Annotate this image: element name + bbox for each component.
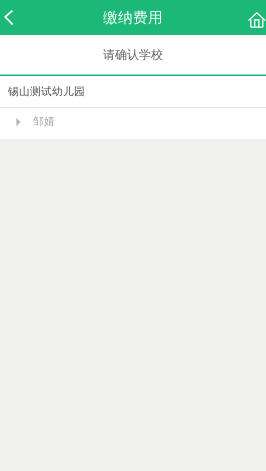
button[interactable]: Home (238, 0, 266, 35)
button[interactable]: Back (0, 0, 24, 35)
staticText: 缴纳费用 (103, 8, 163, 26)
button[interactable]: 请确认学校 (0, 35, 266, 76)
staticText: 请确认学校 (103, 47, 163, 62)
staticText: 锡山测试幼儿园 (8, 85, 85, 98)
button[interactable]: 锡山测试幼儿园 (0, 76, 266, 107)
button[interactable]: 邹婧 (0, 108, 266, 139)
staticText: 邹婧 (33, 115, 55, 128)
